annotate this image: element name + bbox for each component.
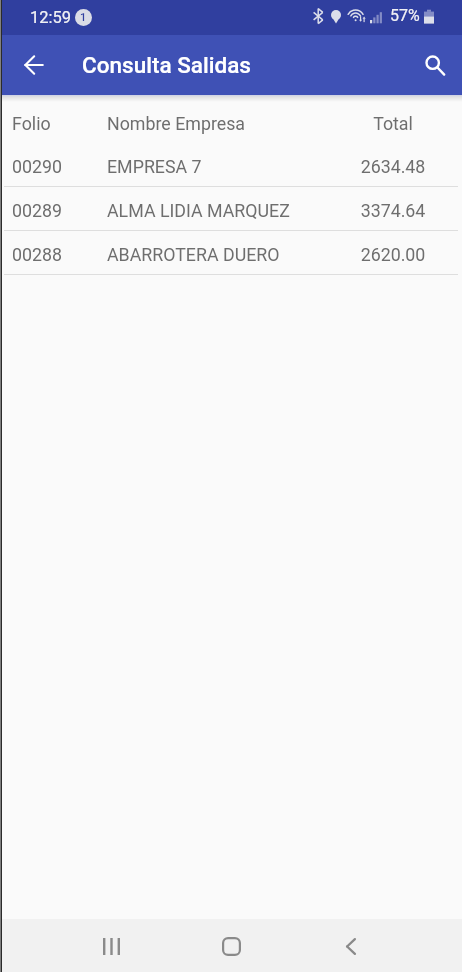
staticText: 2620.00 — [337, 244, 449, 265]
staticText: Nombre Empresa — [107, 113, 337, 134]
staticText: 00288 — [12, 244, 107, 265]
staticText: Folio — [12, 113, 107, 134]
button[interactable]: Search — [411, 41, 459, 89]
staticText: Total — [337, 113, 449, 134]
button[interactable]: Recent apps — [87, 922, 135, 970]
button[interactable]: 00289 — [0, 187, 462, 231]
staticText: 1 — [80, 11, 87, 24]
button[interactable]: Back — [327, 922, 375, 970]
staticText: ALMA LIDIA MARQUEZ — [107, 200, 337, 221]
staticText: 00289 — [12, 200, 107, 221]
staticText: 00290 — [12, 156, 107, 177]
staticText: Consulta Salidas — [82, 52, 251, 78]
button[interactable]: 00288 — [0, 231, 462, 275]
staticText: ABARROTERA DUERO — [107, 244, 337, 265]
staticText: 2634.48 — [337, 156, 449, 177]
staticText: 57% — [390, 6, 420, 25]
staticText: EMPRESA 7 — [107, 156, 337, 177]
button[interactable]: Home — [207, 922, 255, 970]
staticText: 3374.64 — [337, 200, 449, 221]
staticText: 12:59 — [30, 8, 72, 27]
button[interactable]: Back — [10, 41, 58, 89]
button[interactable]: 00290 — [0, 143, 462, 187]
